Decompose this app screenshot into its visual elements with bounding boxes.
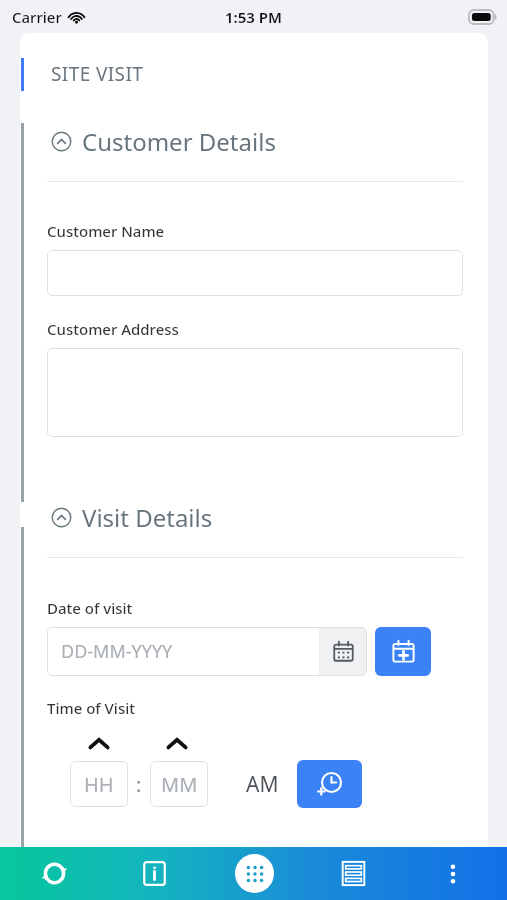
button[interactable]: More options <box>407 847 499 900</box>
button[interactable]: HH <box>70 761 128 807</box>
button[interactable] <box>47 250 463 296</box>
button[interactable]: Customer Details <box>20 123 488 160</box>
staticText: Visit Details <box>82 501 213 534</box>
button[interactable]: SITE VISIT <box>20 57 488 91</box>
button[interactable] <box>47 348 463 437</box>
button[interactable]: MM <box>150 761 208 807</box>
staticText: : <box>136 771 142 798</box>
staticText: Carrier <box>12 7 62 27</box>
button[interactable]: Visit Details <box>20 499 488 536</box>
staticText: Time of Visit <box>47 698 135 718</box>
button[interactable]: Pick date <box>375 627 431 676</box>
staticText: Customer Address <box>47 319 179 339</box>
button[interactable]: Sync <box>8 847 100 900</box>
staticText: DD-MM-YYYY <box>61 639 173 664</box>
staticText: Customer Name <box>47 221 165 241</box>
staticText: Date of visit <box>47 598 133 618</box>
staticText: HH <box>84 771 114 798</box>
button[interactable]: AM <box>242 766 283 803</box>
staticText: Customer Details <box>82 125 276 158</box>
button[interactable]: List <box>307 847 399 900</box>
staticText: MM <box>161 771 198 798</box>
button[interactable]: DD-MM-YYYY <box>47 627 367 676</box>
button[interactable]: Apps <box>208 847 300 900</box>
button[interactable]: Info <box>108 847 200 900</box>
staticText: SITE VISIT <box>51 61 144 87</box>
staticText: AM <box>246 770 279 799</box>
staticText: 1:53 PM <box>225 7 282 27</box>
button[interactable]: Pick time <box>297 760 362 808</box>
